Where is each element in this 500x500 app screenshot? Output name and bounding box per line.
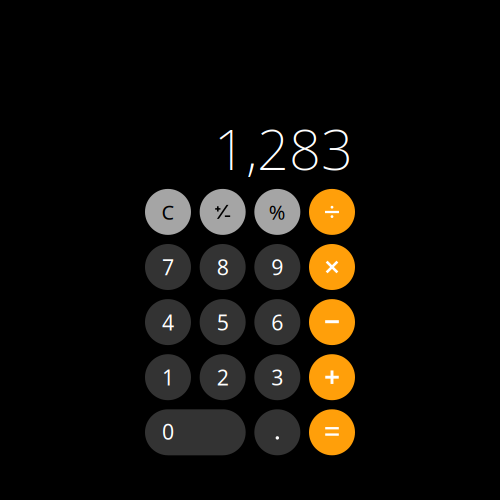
button[interactable]: Decimal point [254,409,300,455]
button[interactable]: Equals [309,409,355,455]
button[interactable]: 7 [145,244,191,290]
staticText: 3 [271,363,283,391]
button[interactable]: 0 [145,409,246,455]
staticText: C [161,199,174,225]
button[interactable]: 2 [200,354,246,400]
button[interactable]: 9 [254,244,300,290]
button[interactable]: Subtract [309,299,355,345]
button[interactable]: Toggle sign [200,189,246,235]
staticText: 4 [162,308,174,336]
staticText: 1 [162,363,174,391]
staticText: 8 [217,253,229,281]
staticText: 0 [162,417,174,445]
button[interactable]: 3 [254,354,300,400]
button[interactable]: Multiply [309,244,355,290]
staticText: % [269,199,286,225]
staticText: 5 [217,308,229,336]
button[interactable]: 6 [254,299,300,345]
button[interactable]: Add [309,354,355,400]
button[interactable]: Clear [145,189,191,235]
button[interactable]: 8 [200,244,246,290]
button[interactable]: Percent [254,189,300,235]
button[interactable]: 1 [145,354,191,400]
button[interactable]: Divide [309,189,355,235]
staticText: 9 [271,253,283,281]
button[interactable]: 4 [145,299,191,345]
staticText: 1,283 [214,111,353,185]
button[interactable]: 5 [200,299,246,345]
staticText: 6 [271,308,283,336]
staticText: 2 [217,363,229,391]
staticText: 7 [162,253,174,281]
